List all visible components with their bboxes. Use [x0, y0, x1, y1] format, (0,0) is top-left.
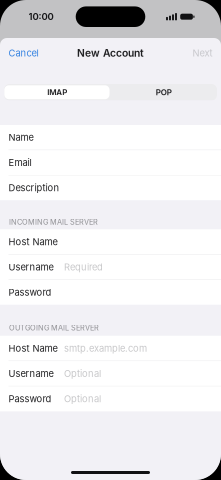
button[interactable]: IMAP [4, 84, 110, 100]
staticText: Required [64, 261, 103, 273]
button[interactable]: Cancel [0, 38, 38, 68]
staticText: Cancel [8, 47, 38, 59]
staticText: Email [8, 157, 31, 168]
staticText: Password [8, 393, 51, 404]
staticText: Username [8, 261, 53, 273]
staticText: New Account [77, 47, 144, 59]
button[interactable]: Username [0, 361, 221, 386]
staticText: OUTGOING MAIL SERVER [9, 323, 99, 332]
button[interactable]: Email [0, 150, 221, 175]
staticText: POP [156, 87, 172, 97]
staticText: IMAP [47, 87, 67, 97]
staticText: Host Name [8, 343, 57, 354]
button[interactable]: Host Name [0, 336, 221, 361]
button[interactable]: Host Name [0, 229, 221, 254]
staticText: smtp.example.com [64, 343, 147, 354]
staticText: Optional [64, 368, 101, 379]
staticText: Username [8, 368, 53, 379]
staticText: 10:00 [28, 11, 53, 22]
button[interactable]: Description [0, 176, 221, 200]
staticText: Password [8, 287, 51, 298]
button[interactable]: Password [0, 386, 221, 411]
button[interactable]: Name [0, 125, 221, 150]
button[interactable]: POP [110, 84, 217, 100]
staticText: Name [8, 132, 33, 143]
button[interactable]: Next [192, 38, 221, 68]
staticText: Description [8, 182, 59, 194]
staticText: Host Name [8, 236, 57, 247]
button[interactable]: Username [0, 255, 221, 279]
staticText: INCOMING MAIL SERVER [9, 218, 98, 226]
staticText: Next [192, 47, 212, 59]
staticText: Optional [64, 393, 101, 404]
button[interactable]: Password [0, 280, 221, 305]
